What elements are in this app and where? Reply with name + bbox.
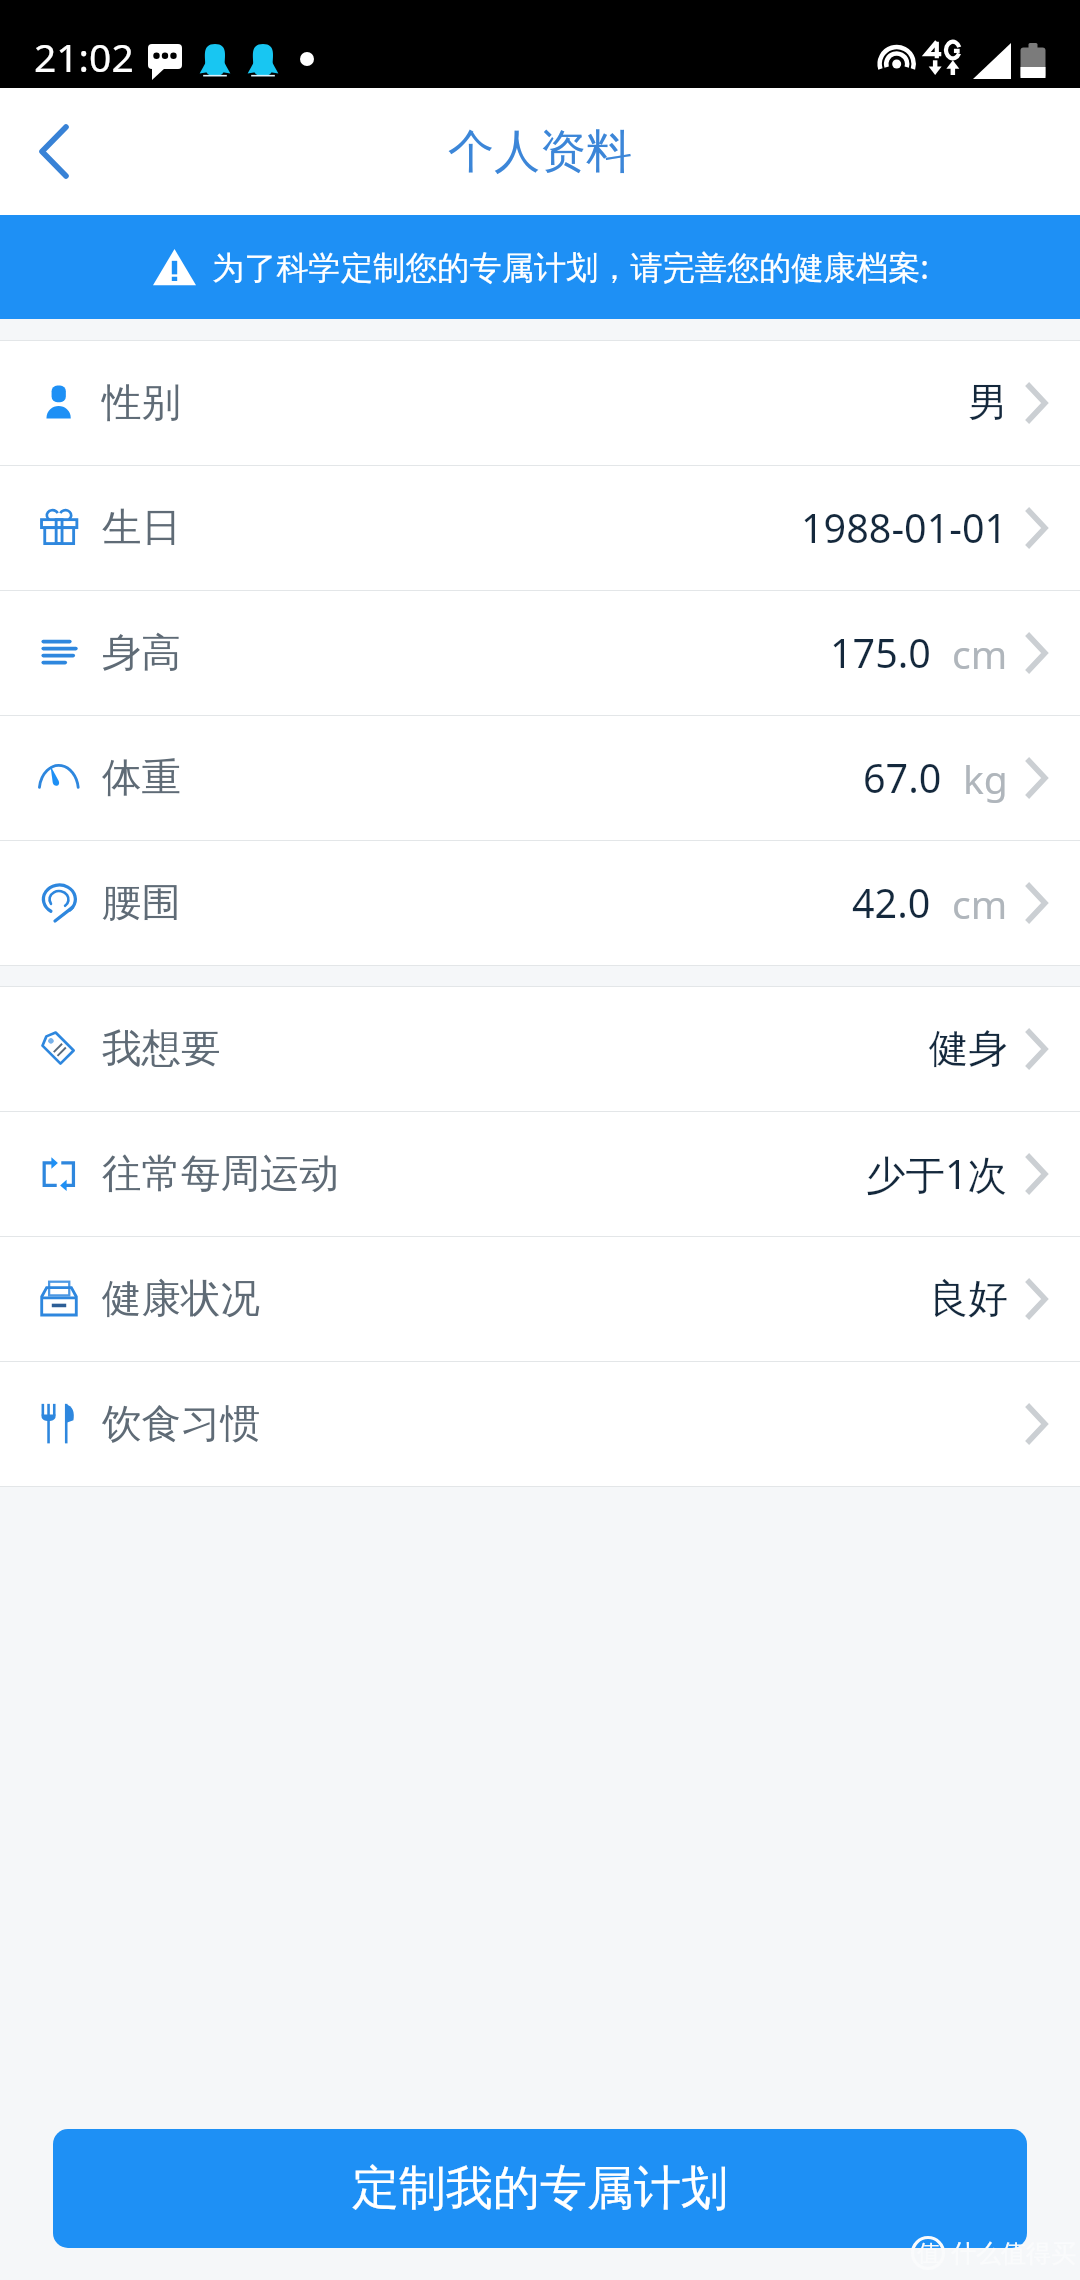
- staticText: 什么值得买: [951, 2238, 1076, 2269]
- staticText: 良好: [929, 1274, 1008, 1324]
- button[interactable]: 身高: [0, 591, 1080, 715]
- staticText: 21:02: [34, 30, 134, 83]
- staticText: 少于1次: [866, 1147, 1008, 1201]
- button[interactable]: 腰围: [0, 841, 1080, 965]
- staticText: 健身: [929, 1024, 1008, 1074]
- staticText: 我想要: [102, 1024, 221, 1074]
- staticText: 1988-01-01: [801, 501, 1008, 555]
- staticText: kg: [963, 752, 1008, 805]
- staticText: 生日: [102, 503, 181, 553]
- staticText: 腰围: [102, 878, 181, 928]
- staticText: 往常每周运动: [102, 1149, 339, 1199]
- staticText: 42.0: [852, 876, 931, 930]
- staticText: 67.0: [863, 751, 942, 805]
- staticText: 为了科学定制您的专属计划，请完善您的健康档案:: [212, 245, 929, 289]
- button[interactable]: 往常每周运动: [0, 1112, 1080, 1236]
- staticText: 体重: [102, 753, 181, 803]
- staticText: 性别: [102, 378, 181, 428]
- button[interactable]: Back: [0, 88, 108, 215]
- staticText: cm: [952, 627, 1008, 680]
- staticText: 饮食习惯: [102, 1399, 260, 1449]
- staticText: 值: [917, 2239, 940, 2268]
- button[interactable]: 我想要: [0, 987, 1080, 1111]
- button[interactable]: 定制我的专属计划: [53, 2129, 1027, 2248]
- button[interactable]: 体重: [0, 716, 1080, 840]
- staticText: 健康状况: [102, 1274, 260, 1324]
- button[interactable]: 饮食习惯: [0, 1362, 1080, 1486]
- button[interactable]: 生日: [0, 466, 1080, 590]
- staticText: cm: [952, 877, 1008, 930]
- staticText: 身高: [102, 628, 181, 678]
- staticText: 175.0: [830, 626, 931, 680]
- staticText: 定制我的专属计划: [352, 2159, 728, 2218]
- staticText: 个人资料: [448, 123, 632, 181]
- staticText: 男: [968, 378, 1008, 428]
- button[interactable]: 性别: [0, 341, 1080, 465]
- button[interactable]: 健康状况: [0, 1237, 1080, 1361]
